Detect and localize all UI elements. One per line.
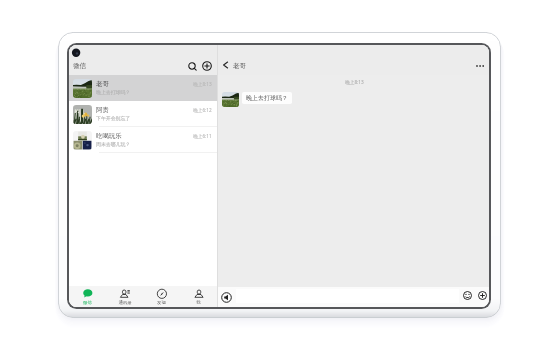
button[interactable]: Voice input: [221, 292, 232, 303]
staticText: 老哥: [233, 62, 246, 70]
button[interactable]: 微信: [69, 286, 106, 307]
button[interactable]: More: [476, 62, 485, 70]
button[interactable]: 阿贵: [69, 101, 217, 127]
staticText: 晚上去打球吗？: [246, 94, 288, 102]
staticText: 老哥: [96, 80, 109, 88]
staticText: 晚上8:13: [193, 81, 212, 87]
staticText: 阿贵: [96, 106, 109, 114]
button[interactable]: 吃喝玩乐: [69, 127, 217, 153]
staticText: 微信: [83, 300, 92, 306]
staticText: 晚上6:11: [193, 133, 212, 139]
button[interactable]: More options: [478, 291, 487, 300]
button[interactable]: Back: [221, 60, 231, 70]
staticText: 晚上去打球吗？: [96, 89, 131, 95]
button[interactable]: 通讯录: [106, 286, 143, 307]
staticText: 晚上8:13: [345, 79, 364, 85]
staticText: 发现: [157, 300, 166, 306]
staticText: 通讯录: [118, 300, 132, 306]
button[interactable]: Search: [186, 60, 198, 72]
staticText: 吃喝玩乐: [96, 132, 122, 140]
staticText: 周末去哪儿玩？: [96, 141, 131, 147]
staticText: 下午开会别忘了: [96, 115, 131, 121]
button[interactable]: Emoji: [463, 291, 472, 300]
staticText: 我: [196, 300, 201, 306]
staticText: 晚上6:12: [193, 107, 212, 113]
button[interactable]: 老哥: [69, 75, 217, 101]
button[interactable]: 我: [180, 286, 217, 307]
button[interactable]: 发现: [143, 286, 180, 307]
button[interactable]: Add: [201, 60, 213, 72]
staticText: 微信: [73, 62, 87, 70]
